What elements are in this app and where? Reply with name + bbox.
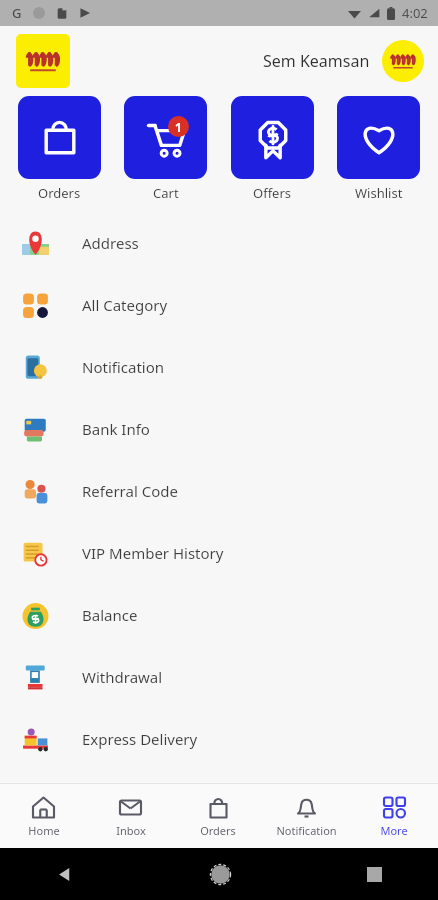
button[interactable]: Profile [382,40,424,82]
staticText: Bank Info [82,419,150,439]
staticText: Referral Code [82,481,178,501]
button[interactable]: Notification [262,784,350,848]
staticText: G [12,4,22,22]
staticText: Sem Keamsan [263,50,370,72]
staticText: Orders [200,823,236,838]
staticText: Notification [276,823,337,838]
button[interactable]: Express Delivery [0,708,438,770]
staticText: Orders [38,184,81,202]
button[interactable]: Orders [174,784,262,848]
staticText: All Category [82,295,168,315]
button[interactable]: Orders [18,96,101,202]
staticText: Cart [153,184,179,202]
button[interactable]: Home [0,784,87,848]
staticText: 4:02 [402,4,428,22]
button[interactable] [16,34,70,88]
staticText: Address [82,233,139,253]
button[interactable]: More [350,784,438,848]
staticText: 1 [175,119,182,135]
button[interactable]: Address [0,212,438,274]
button[interactable]: Notification [0,336,438,398]
other: Back [56,866,73,883]
button[interactable]: Balance [0,584,438,646]
staticText: Wishlist [355,184,403,202]
button[interactable]: Offers [231,96,314,202]
button[interactable]: All Category [0,274,438,336]
staticText: VIP Member History [82,543,224,563]
staticText: More [380,823,408,838]
button[interactable]: VIP Member History [0,522,438,584]
staticText: Notification [82,357,165,377]
staticText: Home [28,823,60,838]
staticText: Offers [253,184,292,202]
button[interactable]: Bank Info [0,398,438,460]
button[interactable]: Withdrawal [0,646,438,708]
button[interactable]: 1 [124,96,207,202]
other: Home [210,864,231,885]
staticText: Express Delivery [82,729,198,749]
staticText: Inbox [116,823,146,838]
staticText: Withdrawal [82,667,163,687]
button[interactable]: Referral Code [0,460,438,522]
button[interactable]: Wishlist [337,96,420,202]
button[interactable]: Inbox [87,784,174,848]
staticText: Balance [82,605,138,625]
